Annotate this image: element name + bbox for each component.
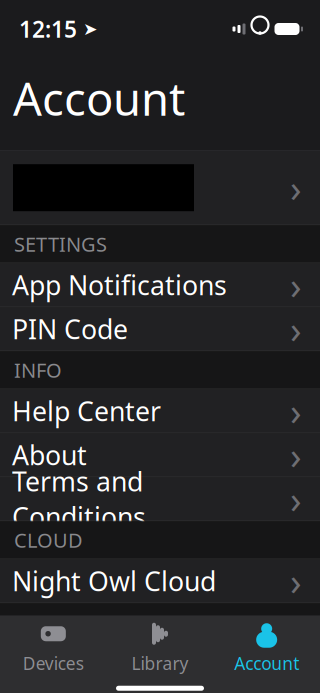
staticText: ›	[290, 260, 302, 310]
button[interactable]: Help Center	[0, 389, 320, 433]
staticText: ›	[290, 556, 302, 606]
staticText: INFO	[14, 357, 62, 383]
staticText: ›	[290, 430, 302, 480]
staticText: Library	[131, 652, 188, 675]
button[interactable]: Terms and Conditions	[0, 477, 320, 521]
button[interactable]: About	[0, 433, 320, 477]
staticText: App Notifications	[12, 267, 227, 303]
staticText: 12:15	[19, 14, 77, 44]
staticText: Account	[234, 652, 299, 675]
staticText: CLOUD	[14, 527, 83, 553]
staticText: Account	[13, 68, 185, 128]
staticText: ›	[290, 474, 302, 524]
staticText: ➤	[77, 19, 98, 39]
staticText: Terms and Conditions	[12, 463, 146, 534]
staticText: SETTINGS	[14, 231, 107, 257]
button[interactable]: App Notifications	[0, 263, 320, 307]
staticText: ›	[290, 304, 302, 354]
button[interactable]: Library	[107, 620, 213, 678]
button[interactable]: PIN Code	[0, 307, 320, 351]
button[interactable]: Devices	[0, 620, 107, 678]
staticText: ›	[290, 163, 302, 212]
staticText: ›	[290, 386, 302, 436]
staticText: PIN Code	[12, 311, 128, 347]
button[interactable]: Account details	[0, 151, 320, 225]
button[interactable]: Night Owl Cloud	[0, 559, 320, 603]
staticText: Night Owl Cloud	[12, 563, 216, 599]
staticText: About	[12, 437, 87, 473]
staticText: Devices	[23, 652, 84, 675]
staticText: Help Center	[12, 393, 161, 429]
button[interactable]: Account	[213, 620, 320, 678]
